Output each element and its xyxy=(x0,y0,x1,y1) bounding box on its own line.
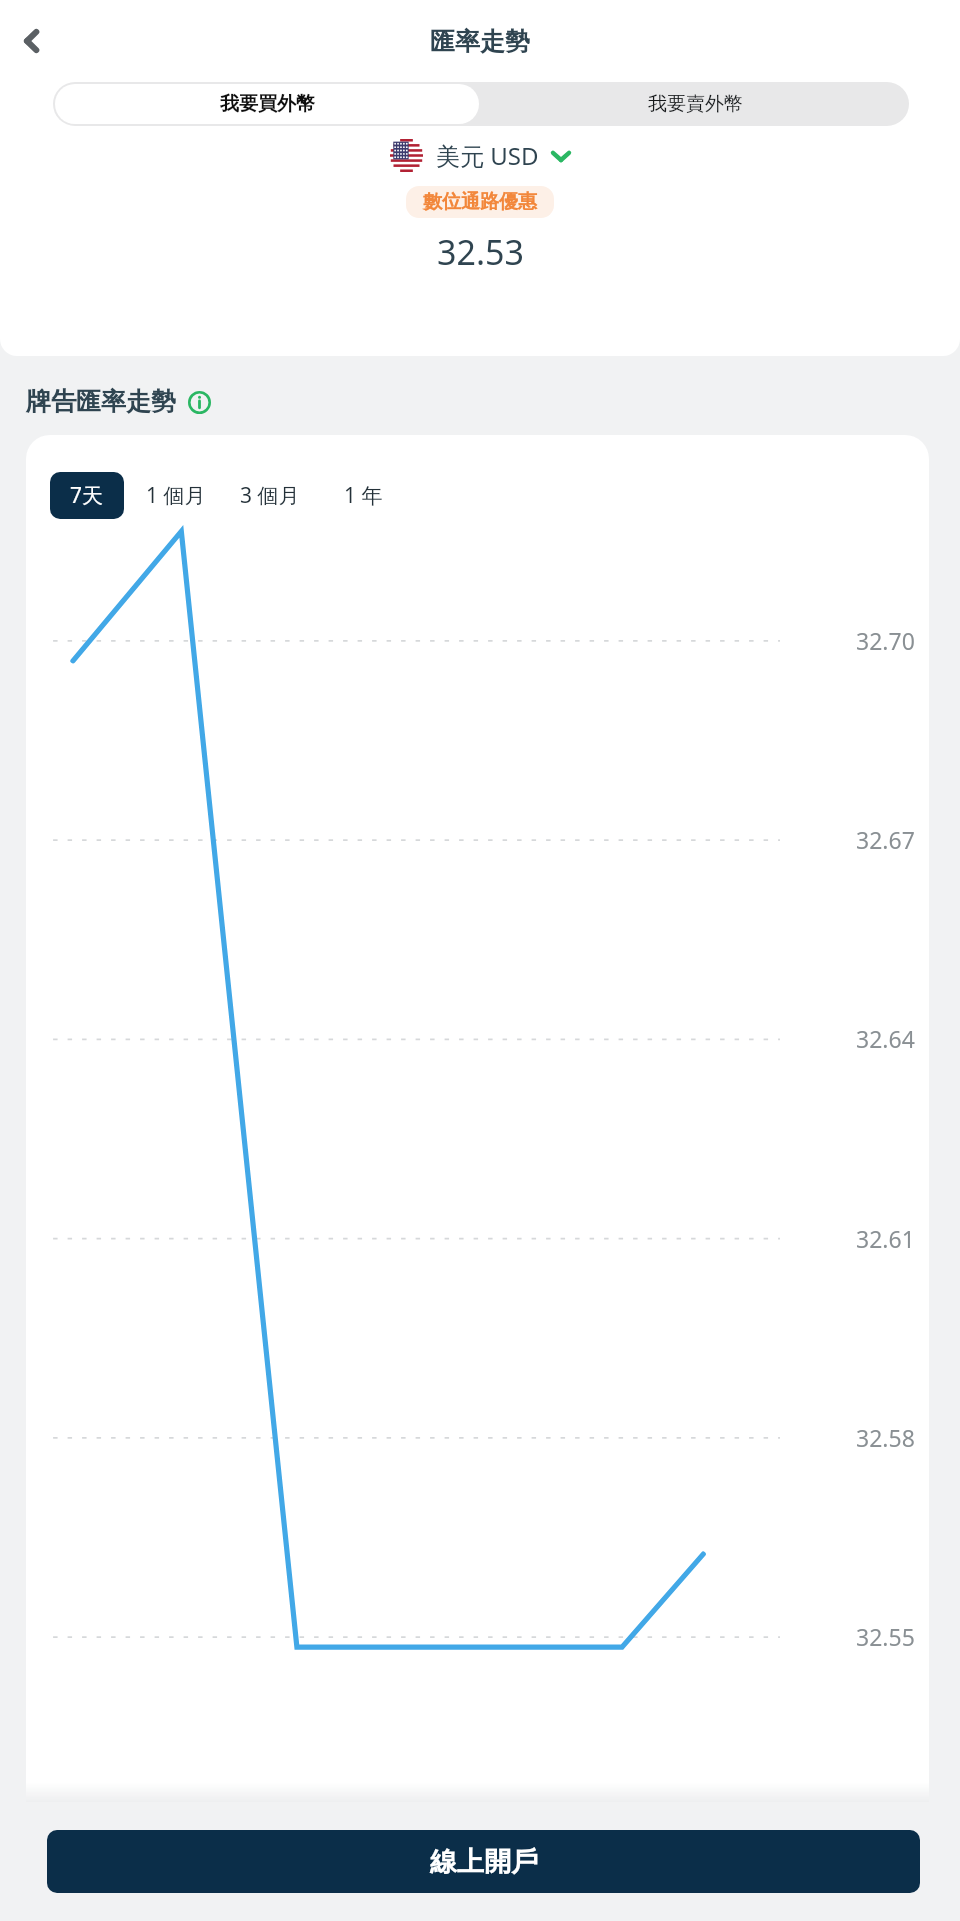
staticText: 3 個月 xyxy=(240,481,300,510)
staticText: 32.70 xyxy=(856,625,915,656)
staticText: 匯率走勢 xyxy=(430,26,530,57)
button[interactable]: 我要賣外幣 xyxy=(481,82,909,126)
staticText: 數位通路優惠 xyxy=(423,190,537,214)
button[interactable]: 3 個月 xyxy=(228,472,312,519)
staticText: 32.64 xyxy=(856,1023,915,1054)
button[interactable]: Back xyxy=(9,18,55,64)
staticText: 1 個月 xyxy=(146,481,206,510)
button[interactable]: 1 個月 xyxy=(134,472,218,519)
staticText: 32.58 xyxy=(856,1422,915,1453)
staticText: 線上開戶 xyxy=(430,1845,538,1879)
staticText: 1 年 xyxy=(344,481,383,510)
staticText: 32.61 xyxy=(856,1223,915,1254)
staticText: 美元 USD xyxy=(436,139,539,172)
staticText: 牌告匯率走勢 xyxy=(26,386,176,417)
staticText: 7天 xyxy=(70,481,104,510)
button[interactable]: 線上開戶 xyxy=(47,1830,920,1893)
button[interactable]: 數位通路優惠 xyxy=(406,186,554,218)
staticText: 我要買外幣 xyxy=(220,92,315,116)
staticText: 32.53 xyxy=(437,229,524,275)
button[interactable]: 我要買外幣 xyxy=(55,84,479,124)
button[interactable]: 1 年 xyxy=(332,472,395,519)
staticText: 32.55 xyxy=(856,1621,915,1652)
button[interactable]: 美元 USD xyxy=(390,139,571,172)
staticText: 32.67 xyxy=(856,824,915,855)
button[interactable]: 7天 xyxy=(50,472,124,519)
staticText: 我要賣外幣 xyxy=(648,92,743,116)
button[interactable]: Information xyxy=(186,389,212,415)
